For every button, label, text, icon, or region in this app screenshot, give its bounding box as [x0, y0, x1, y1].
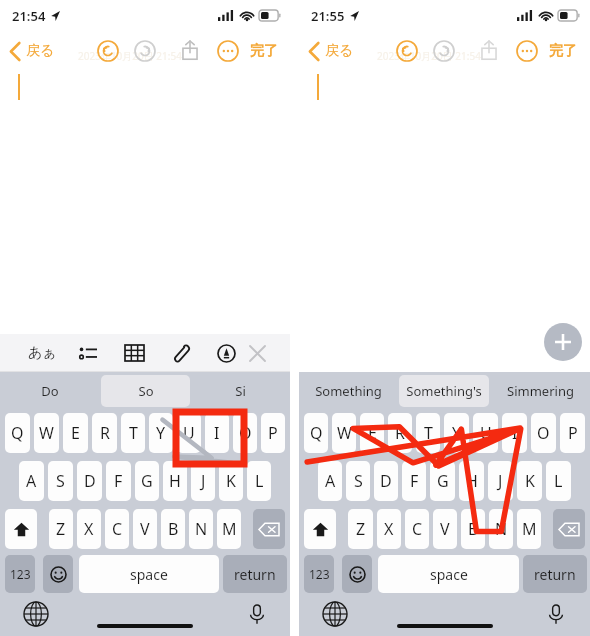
button[interactable]: Y [444, 413, 469, 453]
button[interactable]: Markup [206, 334, 246, 372]
button[interactable]: V [133, 509, 157, 549]
button[interactable]: J [488, 461, 513, 501]
button[interactable]: return [523, 555, 587, 593]
button[interactable]: Shift [304, 509, 336, 549]
button[interactable]: Share [478, 39, 500, 61]
button[interactable]: J [191, 461, 215, 501]
button[interactable]: A [19, 461, 44, 501]
button[interactable]: あぁ [22, 334, 62, 372]
button[interactable]: K [219, 461, 243, 501]
staticText: 21:55 [311, 7, 345, 25]
button[interactable]: Undo [396, 40, 418, 62]
button[interactable]: L [247, 461, 271, 501]
button[interactable]: List [68, 334, 108, 372]
button[interactable]: F [402, 461, 426, 501]
button[interactable]: Simmering [495, 375, 585, 407]
button[interactable]: I [205, 413, 229, 453]
button[interactable]: Backspace [553, 509, 585, 549]
button[interactable]: Table [114, 334, 154, 372]
button[interactable]: Redo [134, 40, 156, 62]
button[interactable]: E [63, 413, 88, 453]
button[interactable]: 完了 [549, 36, 577, 66]
button[interactable]: Something [304, 375, 393, 407]
button[interactable]: H [163, 461, 187, 501]
button[interactable]: X [377, 509, 401, 549]
button[interactable]: More [217, 40, 239, 62]
button[interactable]: Share [179, 39, 201, 61]
button[interactable]: space [378, 555, 519, 593]
button[interactable]: E [360, 413, 384, 453]
button[interactable]: D [77, 461, 102, 501]
button[interactable]: 123 [5, 555, 35, 593]
button[interactable]: V [433, 509, 457, 549]
button[interactable]: Z [348, 509, 373, 549]
button[interactable]: Change keyboard [321, 600, 349, 628]
button[interactable]: O [531, 413, 556, 453]
button[interactable]: H [459, 461, 484, 501]
button[interactable]: C [405, 509, 429, 549]
button[interactable]: 戻る [309, 36, 354, 66]
button[interactable]: Z [49, 509, 73, 549]
button[interactable]: T [416, 413, 440, 453]
button[interactable]: D [374, 461, 398, 501]
button[interactable]: C [105, 509, 129, 549]
button[interactable]: Change keyboard [22, 600, 50, 628]
button[interactable]: G [430, 461, 455, 501]
staticText: U [183, 422, 195, 444]
button[interactable]: P [261, 413, 285, 453]
button[interactable]: R [388, 413, 412, 453]
button[interactable]: G [135, 461, 159, 501]
button[interactable]: Do [5, 375, 95, 407]
button[interactable]: Backspace [253, 509, 285, 549]
button[interactable]: S [346, 461, 370, 501]
button[interactable]: W [34, 413, 59, 453]
button[interactable]: O [233, 413, 257, 453]
button[interactable]: N [189, 509, 213, 549]
button[interactable]: So [101, 375, 190, 407]
button[interactable]: F [106, 461, 131, 501]
button[interactable]: Something's [399, 375, 489, 407]
button[interactable]: Shift [5, 509, 37, 549]
button[interactable]: I [502, 413, 527, 453]
button[interactable]: space [79, 555, 219, 593]
button[interactable]: M [517, 509, 541, 549]
button[interactable]: Y [149, 413, 173, 453]
button[interactable]: B [461, 509, 485, 549]
button[interactable]: Undo [97, 40, 119, 62]
button[interactable]: Emoji [43, 555, 73, 593]
staticText: U [480, 422, 492, 444]
button[interactable]: 完了 [250, 36, 278, 66]
button[interactable]: Emoji [342, 555, 372, 593]
button[interactable]: T [121, 413, 145, 453]
button[interactable]: R [92, 413, 117, 453]
staticText: 123 [10, 566, 31, 582]
button[interactable]: Dictate [243, 600, 271, 628]
button[interactable]: Dictate [542, 600, 570, 628]
staticText: Do [41, 382, 59, 400]
staticText: Something's [406, 382, 482, 400]
button[interactable]: X [77, 509, 101, 549]
button[interactable]: 戻る [10, 36, 55, 66]
button[interactable]: P [560, 413, 585, 453]
button[interactable]: A [318, 461, 342, 501]
button[interactable]: M [217, 509, 241, 549]
button[interactable]: Q [5, 413, 30, 453]
staticText: P [568, 422, 578, 444]
button[interactable]: U [473, 413, 498, 453]
button[interactable]: W [332, 413, 356, 453]
button[interactable]: K [517, 461, 542, 501]
button[interactable]: N [489, 509, 513, 549]
button[interactable]: S [48, 461, 73, 501]
button[interactable]: Q [304, 413, 328, 453]
button[interactable]: B [161, 509, 185, 549]
button[interactable]: Si [196, 375, 285, 407]
button[interactable]: return [223, 555, 287, 593]
button[interactable]: Redo [433, 40, 455, 62]
button[interactable]: Close [246, 334, 268, 372]
button[interactable]: L [546, 461, 571, 501]
button[interactable]: 123 [304, 555, 334, 593]
button[interactable]: U [177, 413, 201, 453]
button[interactable]: Add [544, 323, 582, 361]
button[interactable]: More [516, 40, 538, 62]
button[interactable]: Attach [160, 334, 200, 372]
